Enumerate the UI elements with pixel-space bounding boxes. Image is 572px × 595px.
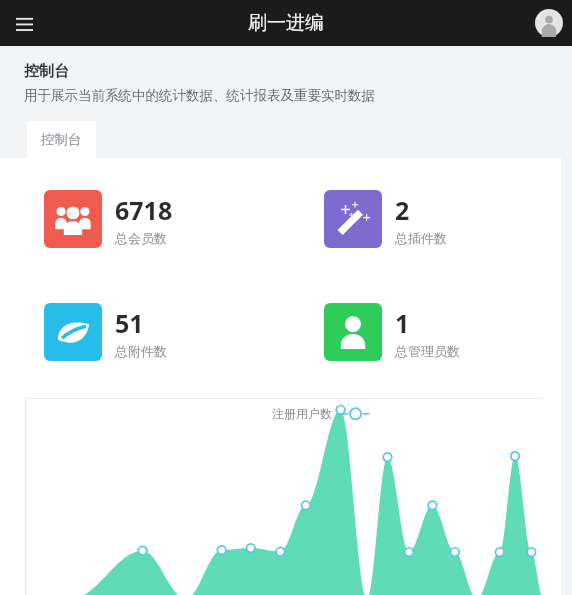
button[interactable]: 控制台	[27, 121, 96, 158]
button[interactable]: Account	[535, 9, 563, 37]
staticText: 控制台	[41, 131, 82, 148]
staticText: 总插件数	[395, 230, 447, 246]
button[interactable]: 1	[280, 303, 561, 361]
staticText: 控制台	[24, 62, 69, 81]
staticText: 6718	[115, 193, 173, 227]
staticText: 总会员数	[115, 230, 167, 246]
staticText: 2	[395, 193, 410, 227]
staticText: 总管理员数	[395, 343, 460, 359]
button[interactable]: 6718	[0, 190, 280, 248]
staticText: 1	[395, 306, 410, 340]
staticText: 注册用户数	[272, 406, 332, 421]
button[interactable]: Menu	[4, 3, 44, 43]
staticText: 总附件数	[115, 343, 167, 359]
staticText: 用于展示当前系统中的统计数据、统计报表及重要实时数据	[24, 87, 375, 104]
staticText: 刷一进编	[248, 11, 324, 35]
button[interactable]: 2	[280, 190, 561, 248]
button[interactable]: 51	[0, 303, 280, 361]
staticText: 51	[115, 306, 144, 340]
